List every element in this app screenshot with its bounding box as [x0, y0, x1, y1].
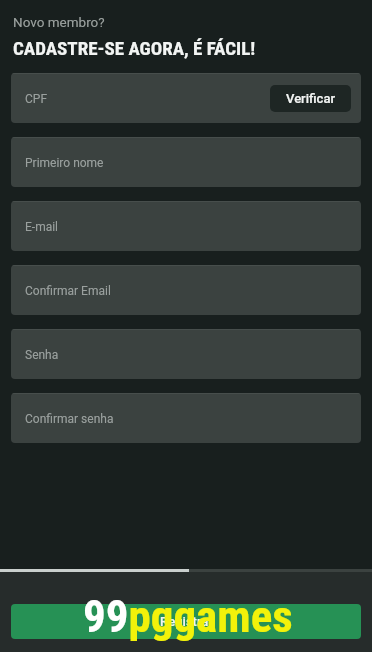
staticText: Verificar — [286, 91, 335, 106]
staticText: Confirmar senha — [25, 412, 114, 426]
button[interactable]: CPF — [11, 73, 361, 123]
staticText: CADASTRE-SE AGORA, É FÁCIL! — [13, 37, 256, 59]
staticText: CPF — [25, 92, 48, 106]
button[interactable]: Confirmar senha — [11, 393, 361, 443]
staticText: Primeiro nome — [25, 156, 104, 170]
button[interactable]: Confirmar Email — [11, 265, 361, 315]
button[interactable]: Registrar — [11, 604, 361, 639]
staticText: Novo membro? — [13, 14, 105, 30]
staticText: E-mail — [25, 220, 59, 234]
button[interactable]: Senha — [11, 329, 361, 379]
staticText: 99pggames — [83, 590, 293, 643]
button[interactable]: Verificar — [270, 85, 351, 112]
button[interactable]: E-mail — [11, 201, 361, 251]
staticText: Registrar — [160, 614, 213, 629]
button[interactable]: Primeiro nome — [11, 137, 361, 187]
staticText: Confirmar Email — [25, 284, 111, 298]
staticText: Senha — [25, 348, 59, 362]
